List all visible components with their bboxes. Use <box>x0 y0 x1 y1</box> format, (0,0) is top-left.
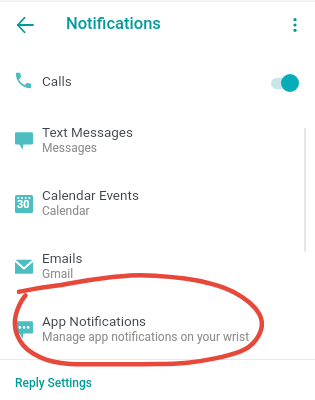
staticText: Text Messages <box>42 124 133 140</box>
staticText: Calendar Events <box>42 187 139 203</box>
staticText: Calls <box>42 73 72 89</box>
staticText: Gmail <box>42 267 74 281</box>
staticText: Messages <box>42 141 98 155</box>
staticText: Reply Settings <box>15 376 93 390</box>
staticText: Calendar <box>42 204 90 218</box>
button[interactable]: Reply Settings <box>0 359 315 400</box>
button[interactable]: Text Messages <box>0 111 315 174</box>
staticText: Notifications <box>66 14 161 33</box>
staticText: App Notifications <box>42 313 147 329</box>
staticText: Manage app notifications on your wrist <box>42 330 250 344</box>
button[interactable]: Emails <box>0 237 315 300</box>
button[interactable]: More options <box>278 8 311 41</box>
staticText: 30 <box>17 198 30 211</box>
button[interactable]: Calls <box>0 55 315 107</box>
button[interactable]: Back <box>8 8 41 41</box>
button[interactable]: App Notifications <box>0 300 315 363</box>
button[interactable]: Calendar Events <box>0 174 315 237</box>
staticText: Emails <box>42 250 83 266</box>
